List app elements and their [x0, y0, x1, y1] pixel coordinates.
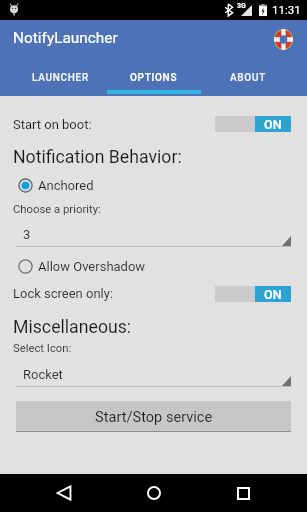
button[interactable]: OPTIONS	[107, 62, 201, 94]
button[interactable]: Back	[43, 474, 84, 512]
button[interactable]: Rocket	[16, 366, 291, 387]
button[interactable]: Start on boot:	[13, 110, 291, 138]
staticText: Allow Overshadow	[38, 259, 146, 274]
staticText: Anchored	[38, 178, 94, 193]
button[interactable]: Help	[272, 27, 295, 50]
button[interactable]: Anchored	[17, 176, 94, 194]
staticText: 3	[23, 227, 31, 242]
staticText: 3G	[237, 2, 246, 10]
button[interactable]: Allow Overshadow	[17, 257, 146, 275]
staticText: Start/Stop service	[95, 408, 213, 425]
staticText: NotifyLauncher	[13, 29, 118, 47]
staticText: Select Icon:	[13, 342, 72, 355]
staticText: LAUNCHER	[32, 72, 89, 84]
staticText: Start on boot:	[13, 117, 92, 132]
staticText: ON	[264, 117, 282, 132]
button[interactable]: Toggle	[215, 286, 291, 302]
staticText: Notification Behavior:	[13, 147, 182, 168]
staticText: Choose a priority:	[13, 203, 101, 216]
button[interactable]: ABOUT	[201, 62, 295, 94]
button[interactable]: Toggle	[215, 116, 291, 132]
staticText: Miscellaneous:	[13, 317, 132, 338]
staticText: 11:31	[272, 3, 301, 16]
button[interactable]: 3	[16, 226, 291, 247]
staticText: Lock screen only:	[13, 286, 114, 301]
button[interactable]: Start/Stop service	[16, 401, 291, 432]
button[interactable]: Recents	[223, 474, 264, 512]
staticText: ABOUT	[230, 72, 266, 84]
staticText: Rocket	[23, 367, 63, 382]
button[interactable]: LAUNCHER	[13, 62, 107, 94]
staticText: ON	[264, 287, 282, 302]
button[interactable]: Home	[133, 474, 174, 512]
staticText: OPTIONS	[130, 72, 178, 84]
